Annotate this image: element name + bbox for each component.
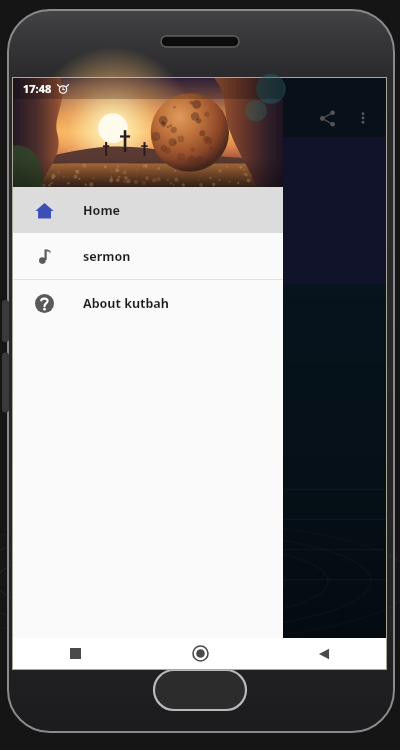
staticText: About kutbah bbox=[83, 295, 169, 312]
staticText: sermon bbox=[83, 248, 131, 265]
button[interactable]: sermon bbox=[13, 233, 283, 279]
button[interactable]: Recent apps bbox=[13, 638, 138, 669]
button[interactable]: Share bbox=[308, 99, 346, 137]
button[interactable]: About kutbah bbox=[13, 280, 283, 326]
button[interactable]: Home bbox=[13, 187, 283, 233]
staticText: Home bbox=[83, 202, 121, 219]
staticText: 17:48 bbox=[23, 81, 52, 96]
button[interactable]: Home bbox=[138, 638, 262, 669]
button[interactable]: Back bbox=[262, 638, 386, 669]
button[interactable]: More options bbox=[346, 101, 380, 135]
